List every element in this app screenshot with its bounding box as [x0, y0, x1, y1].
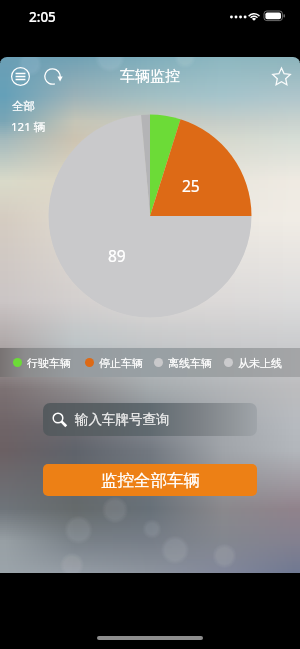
staticText: 离线车辆	[168, 356, 212, 370]
button[interactable]: 行驶车辆	[13, 348, 71, 377]
button[interactable]: 离线车辆	[154, 348, 212, 377]
staticText: 输入车牌号查询	[75, 411, 170, 428]
button[interactable]: Refresh	[40, 64, 64, 88]
staticText: 行驶车辆	[27, 356, 71, 370]
staticText: 25	[182, 175, 200, 196]
staticText: 89	[108, 245, 126, 266]
staticText: 停止车辆	[99, 356, 143, 370]
staticText: 监控全部车辆	[101, 470, 200, 491]
staticText: 121 辆	[11, 119, 46, 135]
staticText: 全部	[12, 99, 35, 113]
staticText: 从未上线	[238, 356, 282, 370]
button[interactable]: Menu	[8, 64, 32, 88]
staticText: 2:05	[29, 8, 56, 26]
button[interactable]: 输入车牌号查询	[43, 403, 257, 436]
button[interactable]: 停止车辆	[85, 348, 143, 377]
button[interactable]: Favorite	[269, 64, 293, 88]
button[interactable]: 监控全部车辆	[43, 464, 257, 496]
button[interactable]: 从未上线	[224, 348, 282, 377]
staticText: 车辆监控	[120, 67, 180, 86]
